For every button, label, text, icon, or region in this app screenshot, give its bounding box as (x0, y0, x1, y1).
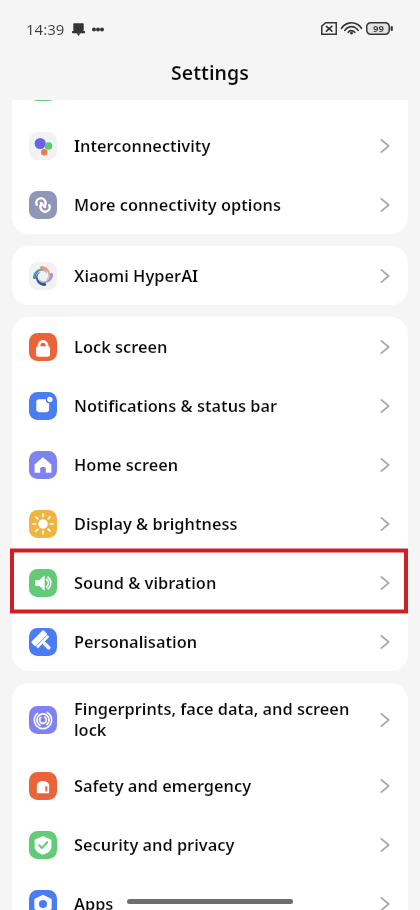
button[interactable]: Xiaomi HyperAI (12, 246, 408, 305)
staticText: Security and privacy (74, 834, 372, 856)
button[interactable]: Display & brightness (12, 494, 408, 553)
staticText: Sound & vibration (74, 572, 372, 594)
staticText: 99 (373, 22, 384, 35)
staticText: Apps (74, 893, 372, 910)
button[interactable]: Personalisation (12, 612, 408, 671)
button[interactable]: Fingerprints, face data, and screen lock (12, 683, 408, 756)
button[interactable]: Home screen (12, 435, 408, 494)
staticText: Notifications & status bar (74, 395, 372, 417)
staticText: Display & brightness (74, 513, 372, 535)
button[interactable]: Security and privacy (12, 815, 408, 874)
staticText: Xiaomi HyperAI (74, 265, 372, 287)
staticText: More connectivity options (74, 194, 372, 216)
button[interactable]: Apps (12, 874, 408, 910)
staticText: Personalisation (74, 631, 372, 653)
staticText: 14:39 (26, 19, 65, 39)
staticText: Fingerprints, face data, and screen lock (74, 698, 354, 741)
staticText: Settings (171, 59, 249, 86)
button[interactable]: Interconnectivity (12, 116, 408, 175)
button[interactable]: Sound & vibration (12, 553, 408, 612)
staticText: Home screen (74, 454, 372, 476)
button[interactable]: Safety and emergency (12, 756, 408, 815)
staticText: Lock screen (74, 336, 372, 358)
button[interactable]: Lock screen (12, 317, 408, 376)
button[interactable]: More connectivity options (12, 175, 408, 234)
button[interactable]: Notifications & status bar (12, 376, 408, 435)
button[interactable]: Bluetooth (12, 100, 408, 116)
staticText: Safety and emergency (74, 775, 372, 797)
staticText: Interconnectivity (74, 135, 372, 157)
